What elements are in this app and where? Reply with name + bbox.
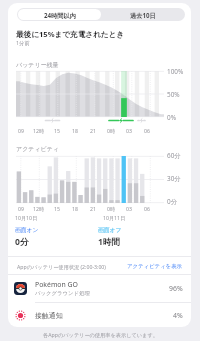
staticText: 画面オフ	[98, 226, 122, 233]
staticText: 0時	[107, 127, 116, 134]
staticText: 09	[18, 205, 24, 212]
staticText: 18	[72, 205, 78, 212]
button[interactable]: Pokémon GO	[8, 274, 191, 302]
staticText: 100%	[167, 67, 184, 76]
staticText: 21	[90, 127, 96, 134]
staticText: Appのバッテリー使用状況 (2:00-3:00)	[17, 263, 106, 270]
staticText: 96%	[169, 284, 183, 293]
staticText: 06	[144, 205, 150, 212]
staticText: Pokémon GO	[35, 280, 78, 289]
staticText: 12時	[33, 127, 45, 134]
staticText: 06	[144, 127, 150, 134]
staticText: 画面オン	[15, 226, 39, 233]
staticText: アクティビティ	[16, 145, 59, 153]
staticText: 0分	[167, 197, 178, 206]
staticText: アクティビティを表示	[127, 263, 182, 270]
staticText: 0時	[107, 205, 116, 212]
staticText: バッテリー残量	[16, 61, 59, 69]
staticText: 1時間	[98, 236, 121, 248]
staticText: 過去10日	[130, 11, 156, 19]
other: 接触通知	[14, 309, 27, 322]
staticText: 1分前	[16, 39, 30, 46]
staticText: 18	[72, 127, 78, 134]
button[interactable]: 24時間以内	[18, 9, 101, 20]
staticText: 09	[18, 127, 24, 134]
staticText: 接触通知	[35, 311, 63, 320]
button[interactable]: 過去10日	[101, 9, 184, 20]
staticText: 12時	[33, 205, 45, 212]
staticText: 10月11日	[103, 214, 126, 221]
staticText: 03	[126, 205, 132, 212]
staticText: 10月10日	[15, 214, 38, 221]
staticText: 最後に15%まで充電されたとき	[16, 29, 125, 39]
staticText: 60分	[167, 151, 181, 160]
staticText: バックグラウンド処理	[35, 290, 90, 297]
staticText: 21	[90, 205, 96, 212]
staticText: 0分	[15, 236, 29, 248]
staticText: 50%	[167, 90, 180, 99]
staticText: 各Appのバッテリーの使用率を表示しています。	[43, 331, 158, 338]
staticText: 30分	[167, 174, 181, 183]
staticText: 03	[126, 127, 132, 134]
staticText: 15	[54, 205, 60, 212]
staticText: 0%	[167, 113, 176, 122]
button[interactable]: 接触通知	[8, 303, 191, 327]
button[interactable]: アクティビティを表示	[127, 263, 182, 270]
staticText: 24時間以内	[44, 11, 76, 19]
staticText: 4%	[173, 311, 183, 320]
other: Pokémon GO	[14, 282, 27, 295]
staticText: 15	[54, 127, 60, 134]
